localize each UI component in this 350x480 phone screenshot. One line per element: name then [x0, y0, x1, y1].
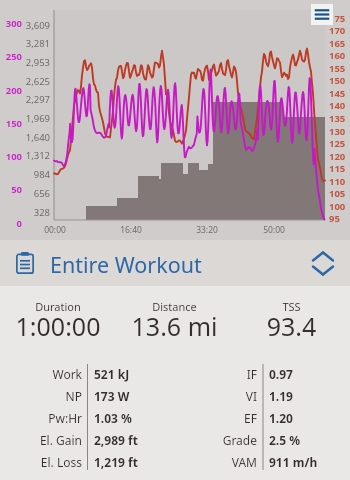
staticText: 250 [0, 50, 22, 63]
staticText: 160 [329, 49, 350, 62]
staticText: TSS [233, 299, 350, 314]
staticText: VAM [195, 454, 257, 470]
staticText: 150 [0, 117, 22, 130]
staticText: 2,989 ft [94, 432, 138, 448]
staticText: 911 m/h [269, 454, 318, 470]
button[interactable]: Distance [116, 288, 233, 344]
staticText: 328 [0, 206, 50, 219]
staticText: 135 [329, 112, 350, 125]
staticText: 1:00:00 [0, 309, 116, 343]
staticText: 1.20 [269, 410, 293, 426]
staticText: Work [18, 366, 82, 382]
staticText: 2,625 [0, 75, 50, 88]
staticText: 13.6 mi [116, 309, 233, 343]
staticText: 130 [329, 125, 350, 138]
staticText: El. Loss [18, 454, 82, 470]
staticText: 175 [329, 12, 350, 25]
staticText: 125 [329, 137, 350, 150]
staticText: 173 W [94, 388, 130, 404]
staticText: Pw:Hr [18, 410, 82, 426]
staticText: Grade [195, 432, 257, 448]
staticText: 140 [329, 99, 350, 112]
staticText: 0.97 [269, 366, 293, 382]
staticText: 1,219 ft [94, 454, 138, 470]
staticText: VI [195, 388, 257, 404]
staticText: 16:40 [111, 224, 151, 236]
staticText: 50 [0, 183, 22, 196]
staticText: 165 [329, 37, 350, 50]
staticText: 100 [329, 200, 350, 213]
staticText: 1.19 [269, 388, 293, 404]
staticText: 33:20 [187, 224, 227, 236]
staticText: 93.4 [233, 309, 350, 343]
staticText: 1,969 [0, 112, 50, 125]
button[interactable]: Expand workout [300, 240, 346, 286]
staticText: 145 [329, 87, 350, 100]
staticText: 150 [329, 74, 350, 87]
staticText: 521 kJ [94, 366, 130, 382]
staticText: Distance [116, 299, 233, 314]
staticText: 115 [329, 162, 350, 175]
staticText: 110 [329, 175, 350, 188]
staticText: 3,281 [0, 37, 50, 50]
staticText: 50:00 [254, 224, 294, 236]
staticText: 2.5 % [269, 432, 301, 448]
button[interactable]: Duration [0, 288, 116, 344]
staticText: 300 [0, 17, 22, 30]
staticText: IF [195, 366, 257, 382]
button[interactable]: TSS [233, 288, 350, 344]
staticText: EF [195, 410, 257, 426]
button[interactable]: Menu [311, 4, 333, 25]
staticText: 2,953 [0, 56, 50, 69]
staticText: 170 [329, 24, 350, 37]
staticText: 120 [329, 150, 350, 163]
staticText: 100 [0, 150, 22, 163]
staticText: El. Gain [18, 432, 82, 448]
staticText: 0 [0, 217, 22, 230]
staticText: Entire Workout [50, 250, 202, 279]
staticText: 3,609 [0, 19, 50, 32]
staticText: 00:00 [35, 224, 75, 236]
staticText: 1,312 [0, 149, 50, 162]
staticText: 2,297 [0, 93, 50, 106]
staticText: 1.03 % [94, 410, 132, 426]
staticText: 155 [329, 62, 350, 75]
staticText: Duration [0, 299, 116, 314]
staticText: NP [18, 388, 82, 404]
staticText: 1,640 [0, 131, 50, 144]
button[interactable]: Entire Workout [0, 240, 350, 286]
staticText: 984 [0, 168, 50, 181]
staticText: 105 [329, 187, 350, 200]
staticText: 200 [0, 84, 22, 97]
staticText: 95 [329, 212, 350, 225]
staticText: 656 [0, 187, 50, 200]
